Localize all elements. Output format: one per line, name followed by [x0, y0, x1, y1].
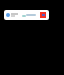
button[interactable]: Stop	[40, 12, 46, 18]
button[interactable]: Stop	[4, 10, 49, 20]
